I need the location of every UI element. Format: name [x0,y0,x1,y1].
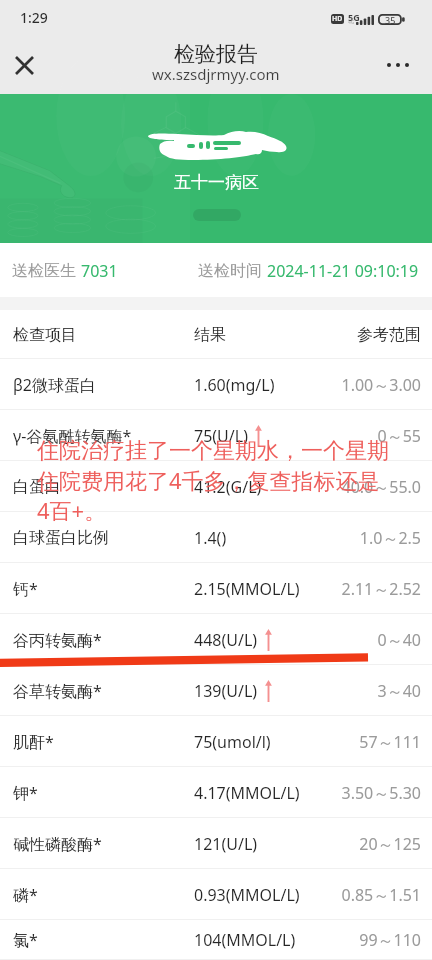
staticText: 结果 [194,325,357,345]
staticText: 检查项目 [13,325,194,345]
staticText: 1:29 [20,8,48,27]
staticText: 139(U/L) [194,680,258,702]
staticText: 2.11～2.52 [341,578,421,600]
staticText: 75(umol/l) [194,731,271,753]
staticText: 40.0～55.0 [341,476,421,498]
button[interactable]: 白蛋白 [0,461,432,512]
staticText: 谷丙转氨酶* [13,629,194,651]
staticText: 送检时间 [198,261,262,281]
staticText: 钾* [13,782,194,804]
staticText: 钙* [13,578,194,600]
staticText: 4.17(MMOL/L) [194,782,300,804]
button[interactable]: Close [7,48,41,82]
button[interactable]: 肌酐* [0,716,432,767]
staticText: 1.0～2.5 [359,527,421,549]
staticText: 3.50～5.30 [341,782,421,804]
staticText: 35 [385,14,396,25]
staticText: 送检医生 [12,261,76,281]
button[interactable]: 白球蛋白比例 [0,512,432,563]
staticText: 2024-11-21 09:10:19 [267,260,419,282]
staticText: 448(U/L) [194,629,258,651]
staticText: 57～111 [359,731,421,753]
staticText: 磷* [13,884,194,906]
button[interactable]: 谷草转氨酶* [0,665,432,716]
staticText: 碱性磷酸酶* [13,833,194,855]
staticText: 3～40 [377,680,421,702]
staticText: 1.60(mg/L) [194,374,275,396]
staticText: 五十一病区 [174,172,259,193]
staticText: 0.85～1.51 [341,884,421,906]
button[interactable]: 钙* [0,563,432,614]
staticText: β2微球蛋白 [13,374,194,396]
staticText: 5G [348,11,360,23]
staticText: HD [332,14,343,24]
button[interactable]: β2微球蛋白 [0,359,432,410]
button[interactable]: More options [381,48,415,82]
staticText: 谷草转氨酶* [13,680,194,702]
staticText: 1.4() [194,527,227,549]
button[interactable]: 碱性磷酸酶* [0,818,432,869]
staticText: 参考范围 [357,325,421,345]
button[interactable]: 氯* [0,920,432,960]
staticText: 0～55 [377,425,421,447]
staticText: 2.15(MMOL/L) [194,578,300,600]
staticText: wx.szsdjrmyy.com [152,64,280,84]
staticText: γ-谷氨酰转氨酶* [13,425,194,447]
staticText: 住院治疗挂了一个星期水，一个星期 [37,437,389,465]
staticText: 白蛋白 [13,477,194,497]
staticText: 20～125 [359,833,421,855]
staticText: 0～40 [377,629,421,651]
staticText: 99～110 [359,929,421,951]
staticText: 104(MMOL/L) [194,929,296,951]
staticText: 住院费用花了4千多，复查指标还是 [37,465,380,495]
button[interactable]: γ-谷氨酰转氨酶* [0,410,432,461]
staticText: 1.00～3.00 [341,374,421,396]
staticText: 4百+。 [37,495,107,525]
staticText: 75(U/L) [194,425,248,447]
staticText: 氯* [13,929,194,951]
staticText: 肌酐* [13,731,194,753]
button[interactable]: 钾* [0,767,432,818]
button[interactable]: 谷丙转氨酶* [0,614,432,665]
button[interactable]: 磷* [0,869,432,920]
staticText: 121(U/L) [194,833,258,855]
staticText: 0.93(MMOL/L) [194,884,300,906]
staticText: 41.2(G/L) [194,476,262,498]
staticText: 4G [348,19,355,26]
staticText: 检验报告 [174,41,258,67]
staticText: 白球蛋白比例 [13,528,194,548]
staticText: 7031 [81,260,118,282]
